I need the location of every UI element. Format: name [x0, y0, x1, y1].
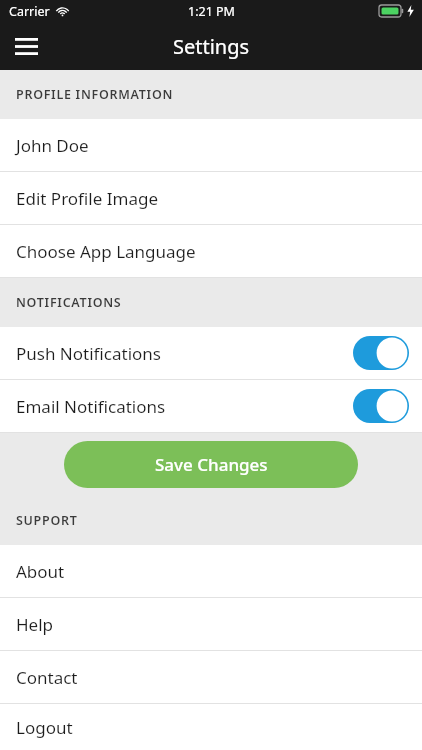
staticText: Settings: [173, 33, 250, 60]
button[interactable]: Contact: [0, 651, 422, 703]
button[interactable]: Choose App Language: [0, 225, 422, 277]
staticText: Help: [16, 613, 54, 636]
button[interactable]: Edit Profile Image: [0, 172, 422, 224]
staticText: Email Notifications: [16, 395, 166, 418]
staticText: About: [16, 560, 65, 583]
button[interactable]: About: [0, 545, 422, 597]
staticText: Logout: [16, 716, 73, 739]
staticText: Carrier: [9, 3, 50, 20]
staticText: Save Changes: [155, 453, 268, 476]
button[interactable]: Push Notifications: [0, 327, 422, 379]
staticText: 1:21 PM: [188, 3, 235, 20]
staticText: Contact: [16, 666, 78, 689]
button[interactable]: Logout: [0, 704, 422, 750]
staticText: Edit Profile Image: [16, 187, 158, 210]
button[interactable]: Email Notifications: [0, 380, 422, 432]
staticText: PROFILE INFORMATION: [16, 86, 174, 103]
staticText: SUPPORT: [16, 512, 78, 529]
button[interactable]: Open navigation menu: [0, 22, 52, 70]
staticText: Push Notifications: [16, 342, 161, 365]
button[interactable]: John Doe: [0, 119, 422, 171]
staticText: NOTIFICATIONS: [16, 294, 122, 311]
button[interactable]: Save Changes: [64, 441, 358, 488]
button[interactable]: Help: [0, 598, 422, 650]
staticText: Choose App Language: [16, 240, 196, 263]
staticText: John Doe: [16, 134, 89, 157]
